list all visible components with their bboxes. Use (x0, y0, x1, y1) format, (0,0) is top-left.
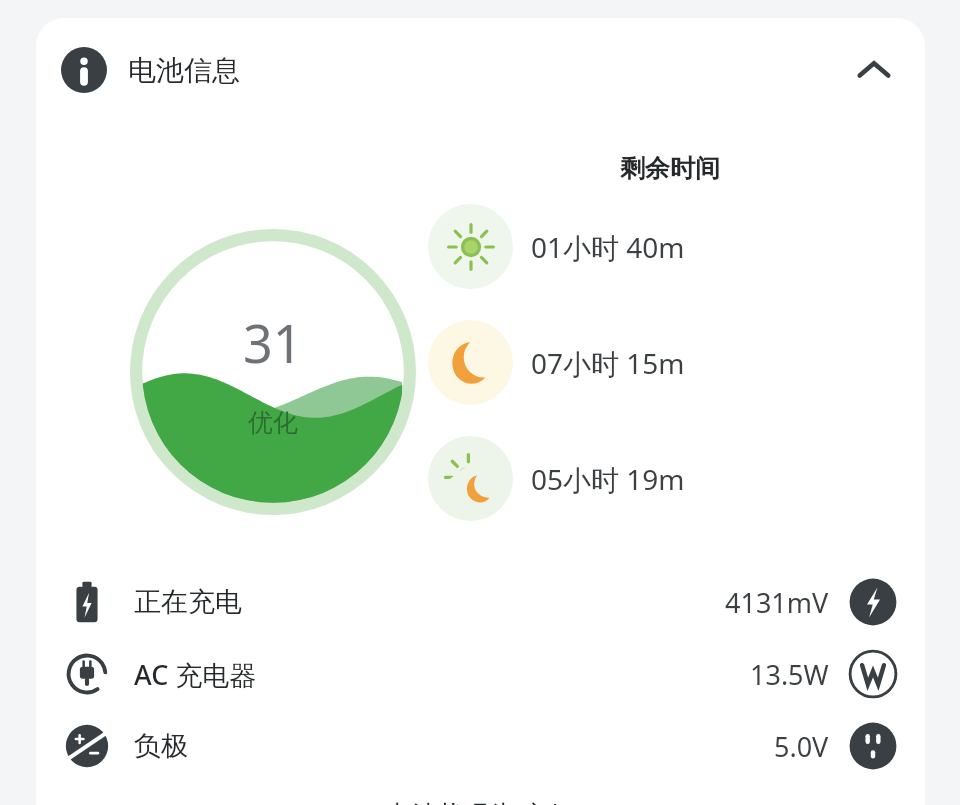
button[interactable]: 正在充电 (36, 566, 925, 638)
button[interactable]: 05小时 19m (414, 436, 925, 521)
staticText: 电池信息 (128, 53, 240, 88)
staticText: 01小时 40m (531, 228, 685, 266)
staticText: 正在充电 (134, 585, 242, 619)
button[interactable]: 07小时 15m (414, 320, 925, 405)
staticText: 07小时 15m (531, 344, 685, 382)
button[interactable]: 负极 (36, 710, 925, 782)
other: Charging (847, 576, 899, 628)
staticText: 13.5W (750, 656, 829, 693)
button[interactable]: 电池信息 (36, 18, 925, 122)
staticText: 电池状况为 良好 (386, 796, 575, 805)
staticText: 4131mV (725, 584, 829, 621)
other: AC charger (847, 648, 899, 700)
staticText: 优化 (248, 407, 298, 438)
staticText: 负极 (134, 729, 188, 763)
staticText: AC 充电器 (134, 656, 257, 693)
other: Negative (847, 720, 899, 772)
button[interactable]: Collapse (851, 47, 897, 93)
button[interactable]: 01小时 40m (414, 204, 925, 289)
button[interactable]: AC 充电器 (36, 638, 925, 710)
staticText: 剩余时间 (620, 153, 720, 184)
staticText: 5.0V (774, 728, 829, 765)
staticText: 31 (243, 307, 303, 378)
staticText: 05小时 19m (531, 460, 685, 498)
